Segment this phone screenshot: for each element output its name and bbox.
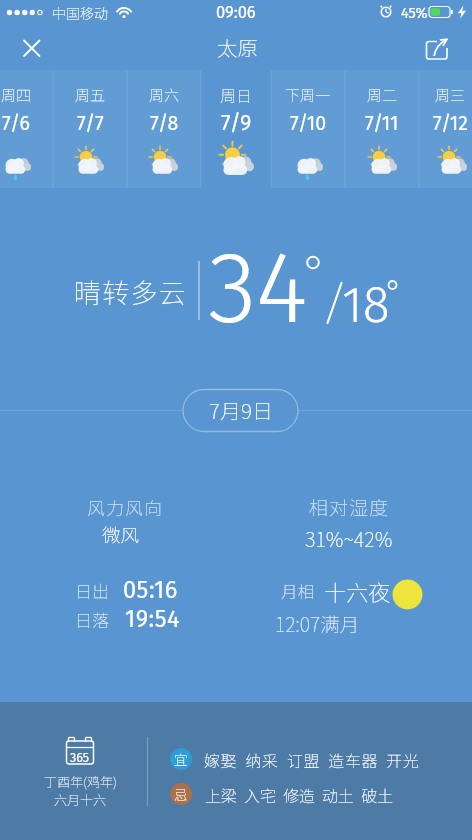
staticText: 十六夜	[324, 575, 391, 607]
staticText: 7/10	[290, 112, 327, 135]
button[interactable]	[416, 30, 458, 66]
staticText: 18	[342, 275, 390, 335]
staticText: 风力风向	[87, 494, 163, 520]
button[interactable]	[166, 744, 428, 774]
staticText: 中国移动	[52, 3, 108, 23]
staticText: 7/11	[365, 112, 399, 135]
button[interactable]	[53, 70, 127, 188]
staticText: 05:16	[123, 576, 178, 604]
staticText: 丁酉年(鸡年)	[44, 772, 117, 791]
staticText: 31%~42%	[305, 524, 393, 553]
staticText: 月相	[281, 579, 314, 603]
button[interactable]	[0, 70, 53, 188]
staticText: 周二	[367, 84, 398, 106]
staticText: 相对湿度	[309, 493, 390, 521]
staticText: 微风	[102, 521, 140, 548]
staticText: 太原	[217, 32, 258, 62]
staticText: 周六	[149, 84, 180, 106]
button[interactable]	[183, 390, 298, 432]
staticText: 忌	[174, 784, 188, 804]
staticText: 下周一	[285, 84, 331, 106]
button[interactable]	[345, 70, 419, 188]
staticText: 周五	[75, 84, 106, 106]
staticText: 09:06	[216, 3, 256, 23]
staticText: 7/6	[2, 112, 30, 135]
staticText: 六月十六	[54, 790, 107, 809]
staticText: 周三	[435, 84, 466, 106]
staticText: 周日	[220, 83, 253, 106]
staticText: 7/9	[221, 110, 252, 136]
staticText: 7/12	[433, 112, 468, 135]
staticText: 周四	[1, 84, 32, 106]
staticText: 宜	[174, 749, 188, 769]
button[interactable]	[419, 70, 472, 188]
staticText: 日出	[75, 578, 109, 603]
staticText: 日落	[75, 607, 109, 632]
staticText: 45%	[401, 4, 428, 21]
button[interactable]	[166, 779, 428, 809]
staticText: 365	[70, 750, 90, 765]
button[interactable]	[201, 70, 271, 188]
button[interactable]	[45, 731, 125, 809]
staticText: 19:54	[125, 605, 181, 633]
button[interactable]	[201, 70, 271, 188]
staticText: 上梁 入宅 修造 动土 破土	[205, 783, 394, 806]
staticText: 12:07满月	[275, 609, 360, 637]
staticText: 7/7	[77, 112, 104, 135]
staticText: 7/8	[150, 112, 179, 135]
staticText: 7月9日	[209, 395, 273, 425]
staticText: 晴转多云	[74, 272, 187, 311]
button[interactable]	[127, 70, 201, 188]
button[interactable]	[12, 30, 52, 64]
staticText: 34	[208, 228, 308, 348]
staticText: 嫁娶 纳采 订盟 造车器 开光	[204, 748, 420, 771]
button[interactable]	[271, 70, 345, 188]
